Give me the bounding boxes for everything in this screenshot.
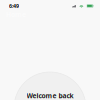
staticText: 6:49 (9, 2, 19, 10)
staticText: Welcome back (26, 91, 73, 100)
button[interactable]: Brand mark (14, 72, 86, 100)
